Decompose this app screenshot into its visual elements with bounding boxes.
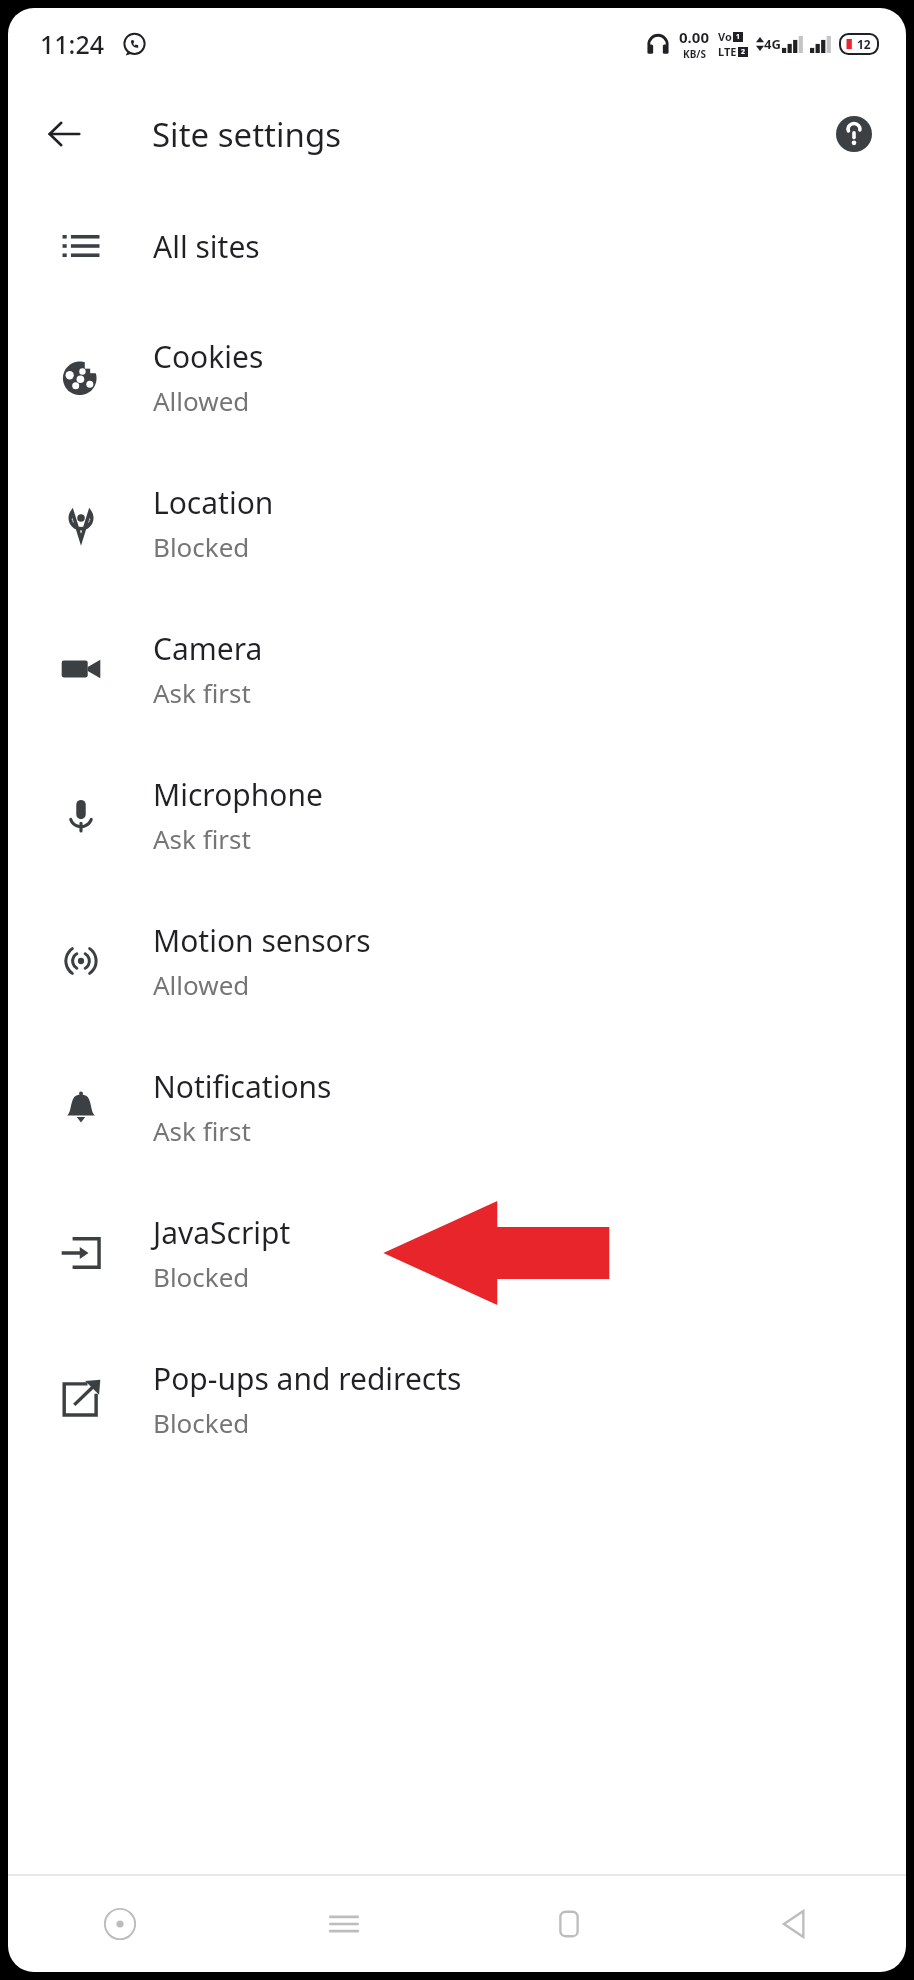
staticText: Ask first [153,821,251,856]
staticText: Vo [718,29,732,44]
staticText: Site settings [152,112,341,157]
button[interactable]: Assistant [8,1876,232,1972]
staticText: Blocked [153,529,250,564]
button[interactable]: Location [8,450,906,596]
staticText: Pop-ups and redirects [153,1358,462,1399]
button[interactable]: Back [26,96,102,172]
staticText: KB/S [683,47,706,61]
staticText: 0.00 [679,27,709,47]
staticText: Camera [153,628,263,669]
button[interactable]: All sites [8,188,906,304]
button[interactable]: Notifications [8,1034,906,1180]
button[interactable]: Motion sensors [8,888,906,1034]
button[interactable]: Recents [232,1876,456,1972]
staticText: 11:24 [40,27,105,61]
button[interactable]: Pop-ups and redirects [8,1326,906,1472]
staticText: Blocked [153,1259,250,1294]
staticText: 2 [741,47,746,57]
staticText: 12 [857,36,871,52]
staticText: Allowed [153,967,250,1002]
staticText: LTE [718,44,737,59]
button[interactable]: Back [681,1876,906,1972]
staticText: Ask first [153,1113,251,1148]
button[interactable]: Camera [8,596,906,742]
button[interactable]: Microphone [8,742,906,888]
staticText: Microphone [153,774,323,815]
button[interactable]: Help [818,98,890,170]
staticText: 4G [764,35,781,53]
staticText: Blocked [153,1405,250,1440]
button[interactable]: Cookies [8,304,906,450]
button[interactable]: JavaScript [8,1180,906,1326]
staticText: 1 [736,32,741,42]
button[interactable]: Home [456,1876,681,1972]
staticText: Ask first [153,675,251,710]
staticText: All sites [153,226,260,267]
staticText: Allowed [153,383,250,418]
staticText: Location [153,482,274,523]
staticText: JavaScript [153,1212,291,1253]
staticText: Cookies [153,336,264,377]
staticText: Motion sensors [153,920,371,961]
staticText: Notifications [153,1066,332,1107]
